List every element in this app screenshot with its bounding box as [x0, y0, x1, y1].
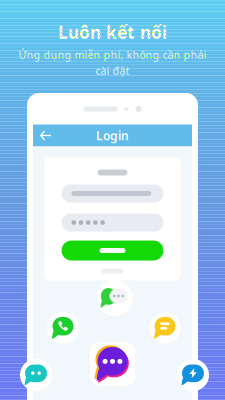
- staticText: cài đặt: [95, 63, 129, 78]
- staticText: Login: [96, 127, 129, 143]
- staticText: Ứng dụng miễn phí, không cần phải: [18, 47, 206, 62]
- button[interactable]: Log in: [61, 240, 163, 260]
- button[interactable]: Back: [33, 125, 58, 146]
- staticText: Luôn kết nối: [58, 20, 167, 43]
